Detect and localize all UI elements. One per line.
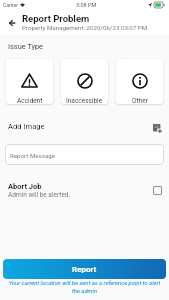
button[interactable]: Report Message (5, 144, 164, 165)
staticText: Add Image (8, 122, 45, 131)
staticText: Report (72, 265, 97, 274)
staticText: Report Message (10, 152, 56, 159)
staticText: Inaccessible (66, 97, 103, 104)
button[interactable]: Back (4, 15, 19, 30)
button[interactable]: Other (116, 59, 163, 104)
button[interactable]: Abort Job (8, 182, 162, 199)
staticText: Admin will be alerted. (8, 191, 71, 199)
staticText: Carrier (3, 2, 18, 8)
staticText: Property Management: 2020/06/23 03:07 PM (22, 24, 148, 31)
button[interactable]: Add image (150, 121, 164, 135)
button[interactable]: Report (3, 259, 166, 279)
staticText: Report Problem (22, 13, 90, 24)
staticText: Issue Type (8, 42, 44, 51)
staticText: Other (132, 97, 148, 104)
staticText: Accident (17, 97, 43, 104)
staticText: Your current location will be sent as a … (4, 280, 165, 294)
staticText: Abort Job (8, 182, 42, 191)
button[interactable]: Inaccessible (61, 59, 108, 104)
button[interactable]: Accident (6, 59, 53, 104)
staticText: 3:08 PM (76, 2, 97, 8)
